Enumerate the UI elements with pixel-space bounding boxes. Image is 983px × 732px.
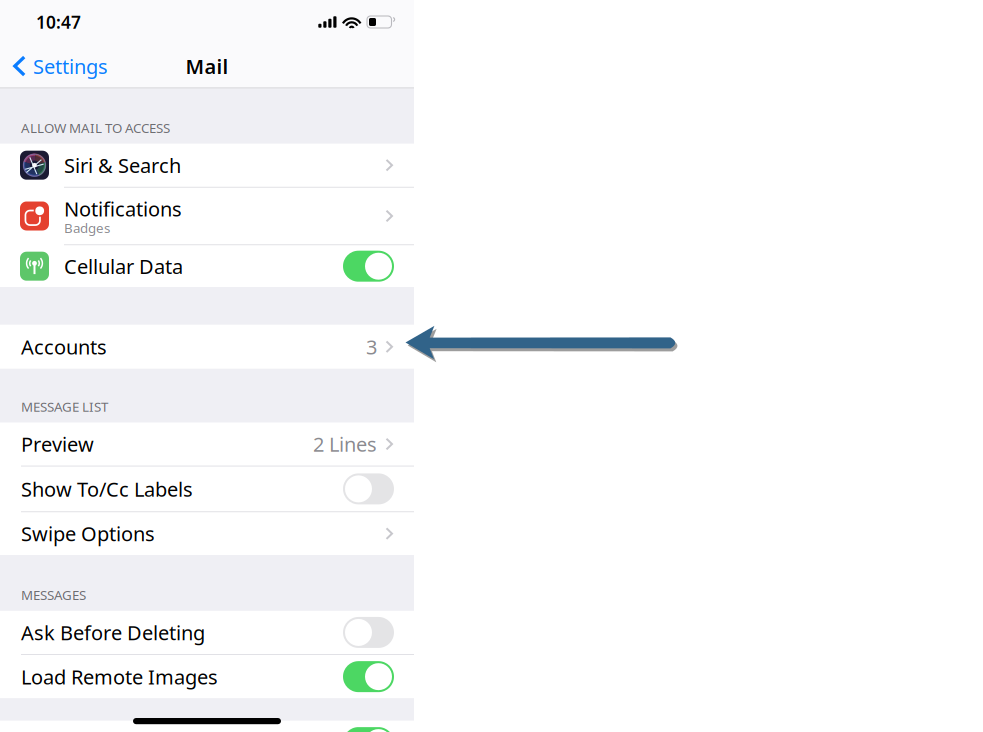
staticText: ALLOW MAIL TO ACCESS — [21, 119, 170, 137]
staticText: Notifications — [64, 195, 182, 222]
button[interactable]: Load Remote Images — [0, 655, 414, 698]
staticText: Show To/Cc Labels — [21, 476, 193, 502]
button[interactable]: Siri & Search — [0, 144, 414, 187]
button[interactable]: Notifications — [0, 188, 414, 244]
staticText: Cellular Data — [64, 253, 183, 279]
staticText: Siri & Search — [64, 152, 181, 178]
staticText: Preview — [21, 431, 94, 457]
button[interactable]: Settings — [0, 43, 108, 90]
staticText: 3 — [366, 333, 377, 360]
staticText: MESSAGES — [21, 586, 86, 604]
button[interactable]: Show To/Cc Labels — [0, 466, 414, 511]
staticText: 2 Lines — [313, 431, 377, 457]
staticText: Mail — [185, 53, 228, 80]
staticText: Ask Before Deleting — [21, 619, 205, 646]
button[interactable]: Swipe Options — [0, 512, 414, 555]
button[interactable]: Accounts — [0, 325, 414, 369]
staticText: Load Remote Images — [21, 663, 218, 690]
staticText: Swipe Options — [21, 520, 155, 547]
staticText: 10:47 — [36, 10, 81, 33]
button[interactable]: Ask Before Deleting — [0, 611, 414, 654]
button[interactable]: Organize by Thread — [0, 721, 414, 732]
button[interactable]: Cellular Data — [0, 245, 414, 287]
staticText: Accounts — [21, 333, 107, 360]
staticText: Settings — [33, 53, 108, 80]
button[interactable]: Preview — [0, 422, 414, 466]
staticText: MESSAGE LIST — [21, 398, 108, 415]
staticText: Badges — [64, 219, 110, 237]
